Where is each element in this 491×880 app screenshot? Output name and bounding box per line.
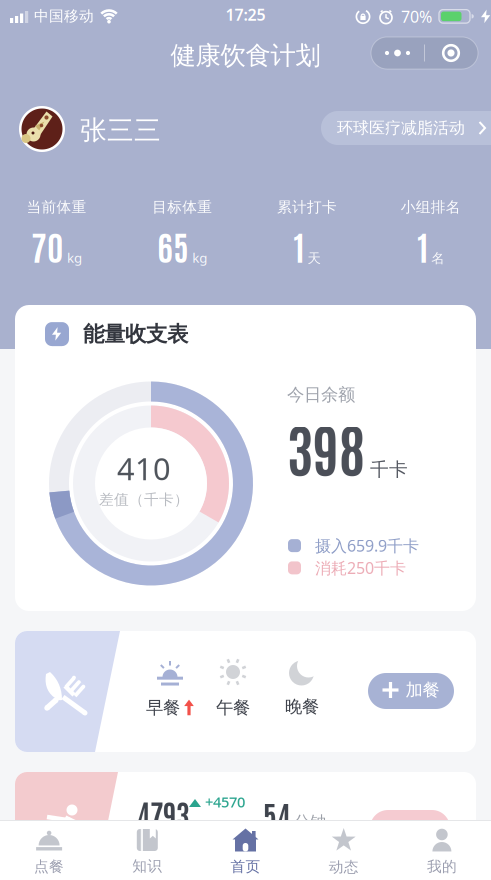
staticText: 今日余额 [287, 384, 355, 405]
button[interactable]: 首页 [196, 824, 295, 880]
staticText: 晚餐 [285, 696, 319, 717]
staticText: 小组排名 [401, 198, 461, 216]
button[interactable]: 加餐 [368, 673, 454, 709]
button[interactable]: Mini program menu [371, 37, 478, 69]
button[interactable]: 我的 [393, 824, 491, 880]
staticText: 目标体重 [152, 198, 212, 216]
staticText: 我的 [427, 857, 457, 875]
staticText: 分钟 [294, 812, 326, 832]
staticText: 动态 [329, 858, 359, 876]
staticText: 知识 [132, 857, 162, 875]
staticText: +4570 [205, 792, 245, 811]
staticText: 1 [293, 224, 304, 267]
staticText: 能量收支表 [83, 321, 188, 347]
staticText: 环球医疗减脂活动 [337, 118, 465, 138]
staticText: 65 [157, 224, 189, 267]
button[interactable]: Add exercise [370, 810, 450, 846]
staticText: 17:25 [225, 4, 265, 25]
staticText: 午餐 [216, 697, 250, 718]
staticText: 54 [263, 795, 291, 834]
staticText: 当前体重 [26, 198, 86, 216]
staticText: 摄入659.9千卡 [315, 535, 419, 556]
staticText: 398 [287, 411, 365, 483]
button[interactable]: Close [424, 37, 478, 69]
staticText: 首页 [230, 857, 260, 875]
staticText: 加餐 [405, 679, 439, 701]
staticText: 410 [117, 448, 171, 489]
staticText: 早餐 [146, 697, 180, 718]
staticText: 中国移动 [34, 7, 94, 25]
staticText: kg [67, 249, 82, 266]
staticText: 消耗250千卡 [315, 557, 406, 578]
staticText: 70% [401, 6, 432, 27]
staticText: 累计打卡 [277, 198, 337, 216]
staticText: 天 [307, 250, 320, 266]
staticText: kg [192, 249, 207, 266]
staticText: 名 [431, 250, 444, 266]
staticText: 健康饮食计划 [170, 40, 320, 71]
button[interactable]: 点餐 [0, 824, 98, 880]
staticText: 1 [417, 224, 428, 267]
button[interactable]: 环球医疗减脂活动 [321, 111, 491, 145]
button[interactable]: 动态 [295, 824, 393, 880]
staticText: 70 [31, 224, 64, 267]
button[interactable]: 知识 [98, 824, 196, 880]
staticText: 张三三 [80, 114, 161, 147]
staticText: 千卡 [370, 458, 408, 481]
staticText: 4793 [137, 795, 190, 832]
staticText: 差值（千卡） [99, 491, 189, 509]
staticText: 点餐 [34, 857, 64, 875]
button[interactable]: More [371, 37, 424, 69]
